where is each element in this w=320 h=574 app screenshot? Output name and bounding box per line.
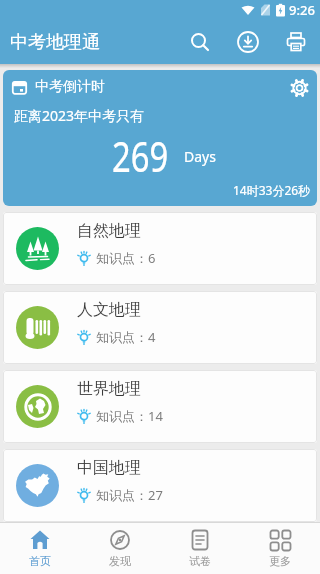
staticText: 14时33分26秒 xyxy=(233,182,311,198)
staticText: 知识点：27 xyxy=(96,486,163,504)
button[interactable]: 世界地理 xyxy=(3,370,317,443)
staticText: 知识点：4 xyxy=(96,328,156,346)
staticText: 人文地理 xyxy=(77,300,141,320)
staticText: 发现 xyxy=(109,554,131,568)
staticText: 更多 xyxy=(269,554,291,568)
staticText: 首页 xyxy=(29,554,51,568)
button[interactable] xyxy=(288,80,310,96)
button[interactable]: 人文地理 xyxy=(3,291,317,364)
button[interactable]: 首页 xyxy=(0,523,80,574)
button[interactable] xyxy=(176,20,224,64)
staticText: 中考地理通 xyxy=(10,31,100,54)
staticText: 知识点：14 xyxy=(96,407,163,425)
button[interactable]: 自然地理 xyxy=(3,212,317,285)
staticText: 9:26 xyxy=(289,1,315,19)
staticText: 知识点：6 xyxy=(96,249,156,267)
button[interactable]: 中国地理 xyxy=(3,449,317,522)
staticText: 试卷 xyxy=(189,554,211,568)
button[interactable] xyxy=(272,20,320,64)
button[interactable]: 试卷 xyxy=(160,523,240,574)
staticText: Days xyxy=(184,147,216,166)
staticText: 世界地理 xyxy=(77,379,141,399)
button[interactable]: 发现 xyxy=(80,523,160,574)
button[interactable] xyxy=(224,20,272,64)
staticText: 中考倒计时 xyxy=(35,78,105,96)
staticText: 距离2023年中考只有 xyxy=(14,106,145,125)
staticText: 自然地理 xyxy=(77,221,141,241)
staticText: 中国地理 xyxy=(77,458,141,478)
staticText: 269 xyxy=(112,128,169,174)
button[interactable]: 更多 xyxy=(240,523,320,574)
